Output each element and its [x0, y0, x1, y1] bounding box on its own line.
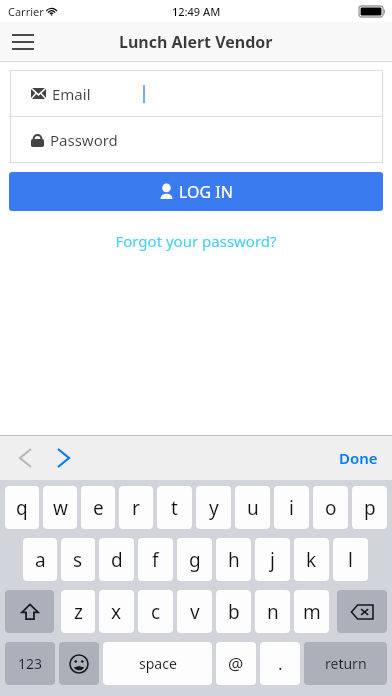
- staticText: return: [325, 654, 367, 673]
- staticText: g: [189, 547, 201, 573]
- button[interactable]: s: [61, 538, 95, 581]
- staticText: c: [151, 599, 161, 625]
- button[interactable]: Email: [9, 71, 383, 116]
- staticText: 12:49 AM: [172, 4, 221, 19]
- staticText: n: [267, 599, 279, 625]
- staticText: q: [16, 495, 28, 521]
- staticText: p: [364, 495, 376, 521]
- button[interactable]: g: [177, 538, 212, 581]
- button[interactable]: f: [138, 538, 173, 581]
- button[interactable]: v: [177, 590, 212, 633]
- button[interactable]: i: [274, 486, 309, 529]
- button[interactable]: e: [81, 486, 115, 529]
- button[interactable]: u: [235, 486, 270, 529]
- button[interactable]: Emoji: [59, 642, 99, 685]
- button[interactable]: .: [260, 642, 300, 685]
- staticText: 123: [18, 654, 43, 673]
- staticText: l: [348, 547, 353, 573]
- staticText: x: [111, 599, 122, 625]
- button[interactable]: Numbers: [5, 642, 55, 685]
- button[interactable]: Backspace: [337, 590, 387, 633]
- button[interactable]: b: [216, 590, 251, 633]
- staticText: Lunch Alert Vendor: [119, 31, 273, 53]
- button[interactable]: Menu: [6, 25, 40, 59]
- staticText: v: [190, 599, 200, 625]
- staticText: Password: [50, 130, 118, 150]
- button[interactable]: Shift: [5, 590, 54, 633]
- staticText: Email: [52, 84, 91, 104]
- button[interactable]: h: [216, 538, 251, 581]
- button[interactable]: Return: [304, 642, 387, 685]
- staticText: space: [139, 654, 177, 673]
- staticText: @: [228, 652, 244, 675]
- button[interactable]: w: [43, 486, 77, 529]
- button[interactable]: space: [103, 642, 212, 685]
- button[interactable]: Password: [9, 117, 383, 162]
- button[interactable]: @: [216, 642, 256, 685]
- staticText: u: [247, 495, 259, 521]
- button[interactable]: Done: [325, 442, 392, 474]
- button[interactable]: y: [196, 486, 231, 529]
- button[interactable]: Forgot your password?: [105, 228, 287, 254]
- button[interactable]: Next field: [46, 441, 80, 475]
- button[interactable]: l: [333, 538, 368, 581]
- staticText: b: [228, 599, 240, 625]
- staticText: e: [93, 495, 104, 521]
- button[interactable]: t: [157, 486, 192, 529]
- button[interactable]: o: [313, 486, 348, 529]
- button[interactable]: a: [23, 538, 57, 581]
- button[interactable]: x: [99, 590, 134, 633]
- staticText: r: [132, 495, 140, 521]
- staticText: Carrier: [8, 4, 44, 19]
- staticText: s: [73, 547, 83, 573]
- staticText: w: [53, 495, 68, 521]
- button[interactable]: p: [352, 486, 387, 529]
- staticText: LOG IN: [179, 181, 233, 203]
- staticText: j: [270, 547, 275, 573]
- button[interactable]: c: [138, 590, 173, 633]
- staticText: m: [303, 599, 321, 625]
- button[interactable]: k: [294, 538, 329, 581]
- staticText: t: [171, 495, 178, 521]
- staticText: h: [228, 547, 240, 573]
- button[interactable]: Previous field: [8, 441, 42, 475]
- button[interactable]: q: [5, 486, 39, 529]
- button[interactable]: j: [255, 538, 290, 581]
- button[interactable]: d: [99, 538, 134, 581]
- staticText: k: [306, 547, 317, 573]
- staticText: o: [325, 495, 337, 521]
- staticText: Done: [339, 448, 378, 468]
- button[interactable]: m: [294, 590, 329, 633]
- staticText: .: [278, 652, 283, 675]
- staticText: i: [289, 495, 294, 521]
- staticText: z: [74, 599, 83, 625]
- button[interactable]: LOG IN: [9, 172, 383, 211]
- staticText: Forgot your password?: [115, 231, 277, 251]
- staticText: f: [152, 547, 159, 573]
- button[interactable]: z: [61, 590, 95, 633]
- button[interactable]: r: [119, 486, 153, 529]
- staticText: d: [111, 547, 123, 573]
- button[interactable]: n: [255, 590, 290, 633]
- staticText: y: [209, 495, 219, 521]
- staticText: a: [35, 547, 46, 573]
